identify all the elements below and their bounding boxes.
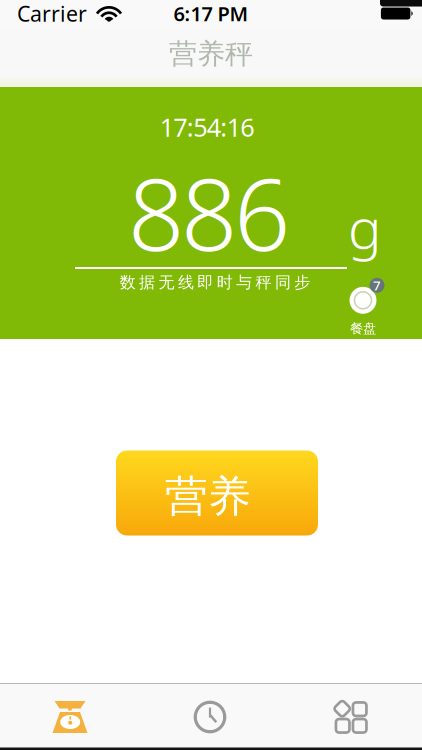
staticText: 数 据 无 线 即 时 与 秤 同 步	[120, 273, 310, 292]
staticText: 6:17 PM	[173, 0, 248, 27]
staticText: 7	[373, 276, 381, 294]
button[interactable]: 更多	[280, 684, 422, 750]
staticText: 886	[128, 147, 290, 278]
staticText: Carrier	[17, 0, 87, 28]
staticText: 营养秤	[169, 37, 253, 71]
staticText: 营养	[165, 470, 251, 523]
staticText: 17:54:16	[160, 110, 254, 144]
button[interactable]: 秤	[0, 684, 140, 750]
button[interactable]: 营养	[116, 450, 318, 535]
staticText: g	[348, 190, 382, 264]
button[interactable]: 历史	[140, 684, 280, 750]
staticText: 餐盘	[350, 320, 376, 337]
button[interactable]: 餐盘	[340, 284, 386, 337]
